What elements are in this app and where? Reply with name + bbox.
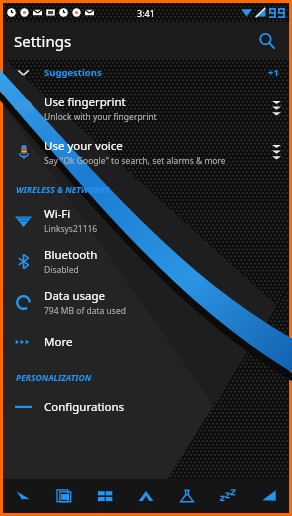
button[interactable]: Data usage (3, 282, 289, 323)
staticText: Unlock with your fingerprint (44, 111, 157, 123)
staticText: Linksys21116 (44, 223, 98, 235)
staticText: Data usage (44, 288, 106, 304)
button[interactable]: Wi-Fi (3, 200, 289, 241)
button[interactable]: Sleep (207, 479, 248, 513)
staticText: More (44, 334, 73, 350)
button[interactable]: Navigate (3, 479, 43, 513)
staticText: Use fingerprint (44, 94, 126, 110)
button[interactable]: Gallery (43, 479, 84, 513)
staticText: Settings (14, 31, 72, 51)
button[interactable]: Lab (166, 479, 207, 513)
button[interactable]: Use fingerprint (3, 86, 289, 130)
button[interactable]: Search (253, 27, 281, 55)
staticText: Suggestions (44, 66, 102, 79)
staticText: Disabled (44, 264, 79, 276)
button[interactable]: More (3, 323, 289, 360)
staticText: WIRELESS & NETWORKS (16, 184, 110, 196)
staticText: PERSONALIZATION (16, 372, 92, 384)
staticText: Configurations (44, 399, 125, 415)
button[interactable]: More options (263, 130, 289, 174)
staticText: Wi-Fi (44, 206, 71, 222)
staticText: +1 (268, 66, 279, 79)
staticText: Use your voice (44, 138, 123, 154)
staticText: 3:41 (137, 7, 155, 19)
staticText: Bluetooth (44, 247, 98, 263)
button[interactable]: Configurations (3, 388, 289, 425)
staticText: Say "Ok Google" to search, set alarms & … (44, 155, 226, 167)
button[interactable]: Expand (125, 479, 166, 513)
button[interactable]: Use your voice (3, 130, 289, 174)
button[interactable]: Apps (84, 479, 125, 513)
staticText: 794 MB of data used (44, 305, 126, 317)
button[interactable]: Back (248, 479, 289, 513)
button[interactable]: Suggestions (3, 59, 289, 86)
button[interactable]: Bluetooth (3, 241, 289, 282)
button[interactable]: More options (263, 86, 289, 130)
